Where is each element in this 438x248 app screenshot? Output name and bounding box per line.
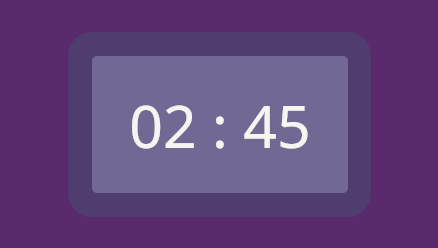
- button[interactable]: Timer 02:45: [68, 32, 371, 217]
- staticText: 02 : 45: [129, 85, 311, 165]
